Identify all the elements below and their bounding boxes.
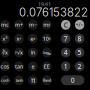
- button[interactable]: 4: [61, 48, 70, 57]
- button[interactable]: m−: [28, 20, 38, 30]
- staticText: m−: [29, 21, 37, 28]
- staticText: log₁₀: [43, 50, 50, 55]
- staticText: tanh: [15, 77, 22, 83]
- staticText: 19:41: [38, 1, 51, 8]
- button[interactable]: xʸ: [14, 34, 24, 44]
- staticText: mc: [1, 21, 9, 28]
- staticText: 0.076153822: [19, 6, 88, 19]
- button[interactable]: 10ˣ: [42, 34, 51, 44]
- staticText: 1: [64, 62, 68, 71]
- staticText: 10ˣ: [43, 35, 51, 42]
- staticText: Rand: [43, 77, 51, 83]
- button[interactable]: log₁₀: [42, 48, 51, 57]
- staticText: 7: [64, 34, 68, 43]
- staticText: x³: [3, 35, 8, 42]
- button[interactable]: C: [61, 20, 70, 30]
- button[interactable]: π: [28, 75, 38, 85]
- button[interactable]: mc: [0, 20, 10, 30]
- button[interactable]: cosh: [0, 75, 10, 85]
- staticText: 4: [64, 48, 68, 57]
- staticText: cos: [1, 63, 10, 70]
- staticText: 2: [78, 62, 82, 71]
- staticText: ʸ√x: [15, 49, 23, 56]
- staticText: 5: [78, 48, 82, 57]
- staticText: 0: [71, 76, 75, 85]
- button[interactable]: 0: [61, 75, 84, 85]
- staticText: m+: [15, 21, 23, 28]
- staticText: eˣ: [30, 35, 35, 42]
- staticText: π: [31, 76, 35, 85]
- button[interactable]: ʸ√x: [14, 48, 24, 57]
- staticText: ∛x: [2, 49, 8, 56]
- button[interactable]: m+: [14, 20, 24, 30]
- button[interactable]: 7: [61, 34, 70, 44]
- button[interactable]: x³: [0, 34, 10, 44]
- button[interactable]: mr: [42, 20, 51, 30]
- button[interactable]: 2: [75, 61, 84, 71]
- button[interactable]: e: [28, 61, 38, 71]
- staticText: EE: [44, 63, 50, 70]
- button[interactable]: tanh: [14, 75, 24, 85]
- staticText: ln: [31, 49, 35, 56]
- button[interactable]: eˣ: [28, 34, 38, 44]
- button[interactable]: EE: [42, 61, 51, 71]
- button[interactable]: cos: [0, 61, 10, 71]
- button[interactable]: +/−: [75, 20, 84, 30]
- button[interactable]: 8: [75, 34, 84, 44]
- staticText: C: [64, 20, 68, 29]
- staticText: 8: [78, 34, 82, 43]
- button[interactable]: 1: [61, 61, 70, 71]
- staticText: xʸ: [16, 35, 21, 42]
- staticText: mr: [43, 21, 50, 28]
- button[interactable]: Rand: [42, 75, 51, 85]
- staticText: cosh: [1, 77, 9, 83]
- button[interactable]: 5: [75, 48, 84, 57]
- staticText: e: [31, 63, 34, 70]
- button[interactable]: ln: [28, 48, 38, 57]
- button[interactable]: ∛x: [0, 48, 10, 57]
- staticText: tan: [15, 63, 23, 70]
- button[interactable]: tan: [14, 61, 24, 71]
- staticText: +/−: [76, 21, 84, 28]
